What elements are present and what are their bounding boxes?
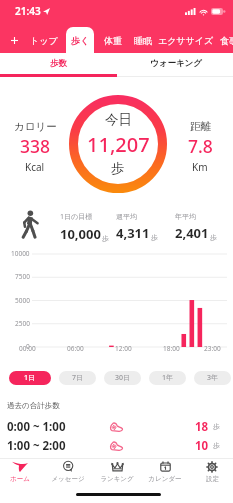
staticText: 年平均 [175,212,196,221]
button[interactable]: 1:00 ~ 2:00 [0,436,233,455]
staticText: カレンダー [148,475,182,483]
staticText: 18:00 [163,344,180,353]
staticText: 距離 [190,120,211,133]
staticText: 11,207 [87,131,150,158]
staticText: 歩 [213,422,220,431]
staticText: 12:00 [115,344,132,353]
button[interactable]: 設定 [189,458,233,486]
staticText: 00:00 [19,344,36,353]
staticText: 歩 [111,160,125,177]
staticText: トップ [30,35,58,46]
staticText: 10 [195,438,209,454]
staticText: ランキング [100,475,134,483]
staticText: 過去の合計歩数 [7,401,60,410]
staticText: Km [192,160,208,174]
staticText: 06:00 [67,344,84,353]
staticText: 今日 [105,111,132,128]
staticText: 0 [26,342,30,351]
button[interactable]: Add [5,28,23,52]
staticText: 10,000 [60,225,101,243]
staticText: メッセージ [51,475,85,483]
staticText: 21:43 [15,4,41,18]
staticText: 体重 [104,35,122,46]
staticText: 5000 [15,296,30,305]
staticText: 1日の目標 [60,212,93,222]
button[interactable]: ホーム [0,458,43,486]
staticText: エクササイズ [158,35,214,46]
staticText: 歩 [151,233,158,242]
staticText: 歩 [102,234,109,243]
staticText: 歩く [71,35,90,46]
staticText: 設定 [206,475,219,483]
staticText: 23:00 [204,344,221,353]
staticText: 2500 [15,319,30,328]
staticText: 1:00 ~ 2:00 [7,438,66,454]
button[interactable]: 1年 [149,371,186,385]
staticText: 歩 [213,441,220,450]
staticText: 食事 [220,35,233,46]
button[interactable]: 食事 [216,28,233,53]
button[interactable]: カレンダー [142,458,188,486]
button[interactable]: ウォーキング [117,53,233,74]
button[interactable]: トップ [26,28,61,53]
staticText: 0:00 ~ 1:00 [7,419,66,435]
staticText: 歩 [210,233,217,242]
button[interactable]: 7日 [59,371,96,385]
staticText: ホーム [10,475,30,483]
staticText: 3年 [207,373,219,383]
button[interactable]: 3年 [194,371,231,385]
button[interactable]: ランキング [94,458,140,486]
button[interactable]: 歩く [67,28,93,53]
staticText: ウォーキング [150,58,202,69]
staticText: 2,401 [175,224,209,242]
button[interactable]: 1日 [9,371,51,385]
staticText: 睡眠 [134,35,152,46]
button[interactable]: エクササイズ [155,28,217,53]
staticText: 338 [20,134,51,158]
staticText: 4,311 [116,224,150,242]
staticText: 18 [195,419,209,435]
button[interactable]: 体重 [100,28,126,53]
button[interactable]: 歩数 [0,53,117,74]
staticText: Kcal [25,160,45,174]
staticText: 1年 [162,373,174,383]
staticText: 7.8 [188,134,213,158]
staticText: 10000 [11,249,30,258]
staticText: 7日 [72,373,84,383]
staticText: 歩数 [50,58,67,69]
staticText: 30日 [115,373,131,383]
staticText: 1日 [24,373,36,383]
button[interactable]: 30日 [104,371,141,385]
staticText: 7500 [15,272,30,281]
button[interactable]: 0:00 ~ 1:00 [0,417,233,436]
button[interactable]: 睡眠 [130,28,156,53]
staticText: 週平均 [116,212,137,221]
staticText: カロリー [14,120,57,133]
button[interactable]: メッセージ [45,458,91,486]
